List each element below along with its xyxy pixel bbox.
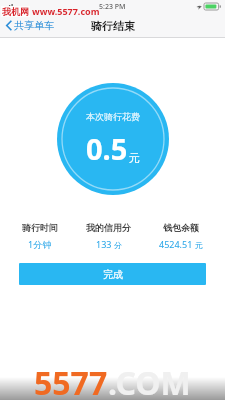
staticText: 元 bbox=[129, 151, 140, 165]
staticText: 钱包余额 bbox=[163, 222, 199, 233]
staticText: 完成 bbox=[103, 268, 123, 281]
staticText: 5577 bbox=[34, 361, 108, 400]
button[interactable]: 共享单车 bbox=[0, 15, 60, 36]
staticText: .COM bbox=[108, 361, 191, 400]
staticText: 骑行结束 bbox=[91, 19, 135, 33]
staticText: 元 bbox=[195, 240, 203, 250]
staticText: 共享单车 bbox=[14, 19, 54, 32]
staticText: 5:23 PM bbox=[99, 2, 126, 12]
staticText: 我的信用分 bbox=[86, 222, 131, 233]
staticText: 4524.51 bbox=[159, 238, 193, 250]
staticText: 我机网 bbox=[2, 6, 29, 17]
staticText: 骑行时间 bbox=[22, 222, 58, 233]
staticText: www.5577.com bbox=[32, 5, 100, 17]
staticText: 本次骑行花费 bbox=[86, 111, 140, 122]
staticText: 133 bbox=[96, 238, 112, 250]
staticText: 1分钟 bbox=[28, 238, 52, 250]
staticText: 分 bbox=[114, 240, 122, 250]
staticText: 0.5 bbox=[86, 129, 128, 168]
button[interactable]: 完成 bbox=[19, 263, 206, 285]
